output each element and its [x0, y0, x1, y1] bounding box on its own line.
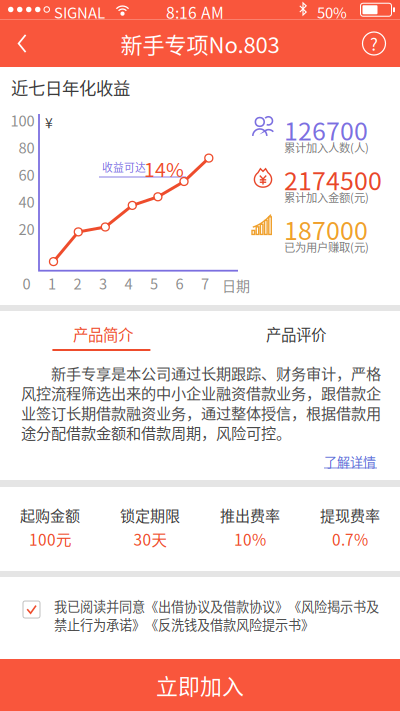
staticText: 已为用户赚取(元) [284, 239, 369, 254]
staticText: 4 [124, 273, 132, 292]
staticText: 新手专项No.803 [120, 29, 279, 58]
staticText: 10% [234, 529, 266, 549]
staticText: ¥ [45, 113, 53, 131]
button[interactable]: 产品评价 [200, 311, 400, 357]
staticText: 20 [18, 219, 34, 238]
staticText: 80 [18, 138, 34, 157]
button[interactable]: 了解详情 [324, 453, 380, 469]
staticText: 日期 [222, 276, 250, 294]
staticText: 近七日年化收益 [11, 76, 130, 99]
staticText: 提现费率 [320, 505, 380, 525]
staticText: 2 [73, 273, 81, 292]
staticText: SIGNAL [54, 2, 105, 22]
staticText: 立即加入 [156, 671, 244, 699]
staticText: 推出费率 [220, 505, 280, 525]
button[interactable]: Back [0, 20, 44, 67]
staticText: 起购金额 [20, 505, 80, 525]
staticText: 产品简介 [73, 324, 133, 344]
staticText: 3 [99, 273, 107, 292]
button[interactable]: 立即加入 [0, 659, 400, 711]
staticText: 126700 [284, 113, 368, 146]
staticText: 1 [48, 273, 56, 292]
staticText: 100元 [29, 529, 71, 549]
staticText: 187000 [284, 213, 368, 245]
staticText: 了解详情 [324, 452, 376, 469]
staticText: 100 [10, 110, 34, 130]
staticText: 新手专享是本公司通过长期跟踪、财务审计，严格风控流程筛选出来的中小企业融资借款业… [21, 363, 381, 442]
staticText: 14% [144, 156, 184, 181]
button[interactable]: 我已阅读并同意《出借协议及借款协议》《风险揭示书及禁止行为承诺》《反洗钱及借款风… [0, 577, 400, 659]
staticText: 7 [201, 273, 209, 292]
staticText: 6 [175, 273, 183, 292]
button[interactable]: Help [352, 20, 396, 67]
staticText: 8:16 AM [166, 2, 224, 22]
staticText: 30天 [133, 529, 166, 549]
staticText: 产品评价 [266, 324, 326, 344]
staticText: 40 [18, 192, 34, 211]
staticText: 我已阅读并同意《出借协议及借款协议》《风险揭示书及禁止行为承诺》《反洗钱及借款风… [54, 597, 379, 633]
staticText: 2174500 [284, 163, 382, 196]
staticText: 50% [317, 2, 347, 22]
staticText: 0.7% [332, 529, 368, 549]
staticText: 累计加入人数(人) [284, 140, 369, 155]
staticText: 60 [18, 165, 34, 184]
staticText: 锁定期限 [120, 505, 180, 525]
staticText: 累计加入金额(元) [284, 190, 369, 204]
staticText: ? [370, 33, 378, 54]
staticText: 5 [150, 273, 158, 292]
button[interactable]: 产品简介 [0, 311, 200, 357]
staticText: 收益可达 [102, 160, 146, 174]
staticText: 0 [22, 273, 30, 292]
